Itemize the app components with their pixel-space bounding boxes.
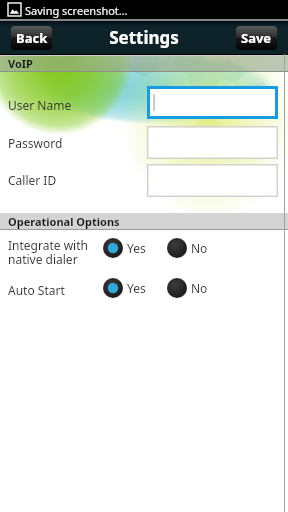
staticText: Caller ID bbox=[8, 172, 143, 188]
staticText: VoIP bbox=[8, 56, 33, 71]
staticText: User Name bbox=[8, 97, 143, 113]
staticText: Auto Start bbox=[8, 282, 103, 298]
button[interactable]: No bbox=[167, 278, 208, 298]
button[interactable]: Back bbox=[11, 26, 52, 50]
staticText: Yes bbox=[127, 240, 146, 256]
staticText: Settings bbox=[0, 26, 288, 49]
button[interactable] bbox=[147, 164, 278, 197]
button[interactable] bbox=[147, 86, 278, 119]
button[interactable] bbox=[147, 126, 278, 159]
button[interactable]: Yes bbox=[103, 278, 146, 298]
button[interactable]: Save bbox=[236, 26, 277, 50]
staticText: No bbox=[191, 280, 208, 296]
staticText: No bbox=[191, 240, 208, 256]
staticText: Save bbox=[241, 29, 272, 47]
staticText: Integrate with native dialer bbox=[8, 237, 103, 268]
staticText: Operational Options bbox=[8, 214, 120, 229]
staticText: Saving screenshot… bbox=[25, 3, 128, 18]
staticText: Yes bbox=[127, 280, 146, 296]
button[interactable]: No bbox=[167, 238, 208, 258]
staticText: Back bbox=[16, 29, 48, 47]
button[interactable]: Yes bbox=[103, 238, 146, 258]
staticText: Password bbox=[8, 135, 143, 151]
